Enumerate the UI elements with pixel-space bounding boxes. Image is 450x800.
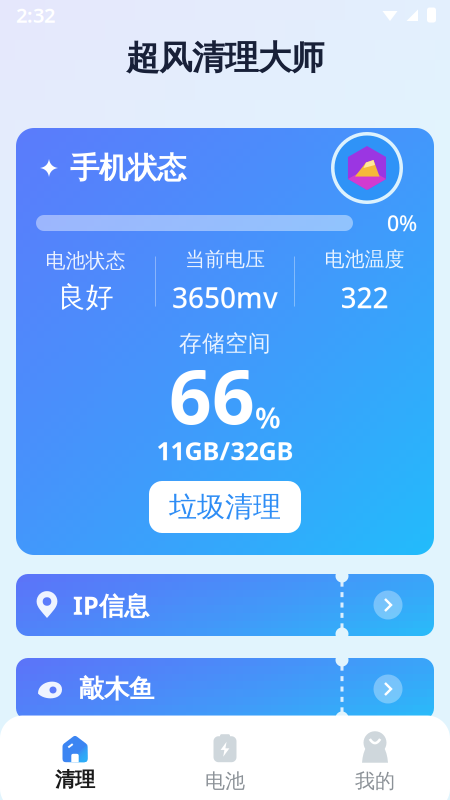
staticText: 超风清理大师: [126, 37, 324, 78]
staticText: 电池状态: [45, 248, 125, 273]
button[interactable]: 清理: [0, 727, 150, 800]
staticText: 66: [169, 345, 255, 445]
staticText: 电池温度: [324, 247, 404, 272]
staticText: 垃圾清理: [169, 490, 281, 524]
button[interactable]: IP信息: [16, 574, 434, 636]
staticText: 手机状态: [70, 150, 186, 186]
button[interactable]: 敲木鱼: [16, 658, 434, 720]
staticText: 0%: [387, 209, 417, 237]
button[interactable]: 垃圾清理: [149, 481, 301, 533]
staticText: 11GB/32GB: [156, 434, 293, 467]
button[interactable]: 我的: [300, 727, 450, 800]
staticText: IP信息: [73, 588, 149, 622]
staticText: 2:32: [16, 2, 55, 28]
staticText: 良好: [57, 280, 113, 314]
staticText: 清理: [55, 767, 95, 792]
button[interactable]: 奖励: [331, 132, 403, 204]
staticText: 3650mv: [172, 279, 278, 316]
staticText: 敲木鱼: [79, 673, 154, 704]
staticText: %: [255, 398, 281, 437]
staticText: 存储空间: [179, 330, 271, 357]
button[interactable]: 电池: [150, 727, 300, 800]
staticText: 我的: [355, 769, 395, 793]
staticText: 322: [340, 279, 388, 316]
staticText: 电池: [205, 769, 245, 793]
staticText: 当前电压: [185, 247, 265, 272]
